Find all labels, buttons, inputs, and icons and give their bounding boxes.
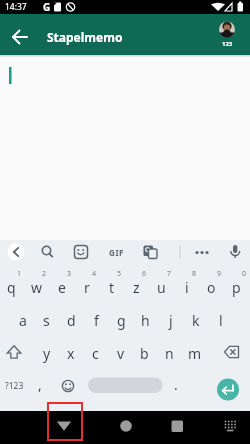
staticText: 8 — [192, 269, 197, 278]
staticText: t — [109, 278, 115, 297]
staticText: g — [117, 311, 126, 330]
button[interactable] — [72, 243, 90, 261]
button[interactable] — [7, 243, 25, 261]
staticText: 5 — [117, 269, 122, 278]
staticText: s — [43, 311, 50, 330]
button[interactable]: t — [99, 276, 124, 298]
button[interactable] — [2, 338, 28, 366]
button[interactable] — [226, 243, 244, 261]
button[interactable]: n — [157, 342, 182, 364]
staticText: y — [43, 344, 51, 363]
button[interactable]: i — [174, 276, 199, 298]
staticText: b — [140, 344, 149, 363]
staticText: o — [207, 278, 216, 297]
staticText: f — [94, 311, 99, 330]
staticText: q — [7, 278, 16, 297]
button[interactable]: p — [224, 276, 249, 298]
button[interactable]: a — [10, 309, 35, 331]
staticText: n — [165, 344, 174, 363]
staticText: 9 — [217, 269, 222, 278]
staticText: 2 — [42, 269, 47, 278]
button[interactable]: g — [109, 309, 134, 331]
staticText: d — [67, 311, 76, 330]
button[interactable]: . — [169, 375, 183, 393]
button[interactable]: e — [49, 276, 74, 298]
staticText: 3 — [67, 269, 72, 278]
button[interactable]: ?123 — [1, 379, 27, 393]
button[interactable]: f — [84, 309, 109, 331]
staticText: 123 — [222, 40, 233, 48]
staticText: m — [188, 344, 202, 363]
button[interactable]: o — [199, 276, 224, 298]
staticText: i — [185, 278, 189, 297]
button[interactable] — [38, 243, 56, 261]
staticText: Stapelmemo — [47, 29, 123, 45]
staticText: r — [84, 278, 90, 297]
button[interactable]: x — [58, 342, 83, 364]
button[interactable]: j — [158, 309, 183, 331]
staticText: z — [133, 278, 140, 297]
button[interactable]: k — [183, 309, 208, 331]
button[interactable] — [216, 18, 240, 48]
button[interactable]: u — [149, 276, 174, 298]
button[interactable]: h — [133, 309, 158, 331]
staticText: p — [232, 278, 241, 297]
button[interactable] — [141, 243, 159, 261]
button[interactable]: b — [132, 342, 157, 364]
staticText: v — [117, 344, 125, 363]
button[interactable] — [217, 378, 239, 400]
button[interactable] — [0, 14, 250, 55]
button[interactable]: y — [34, 342, 59, 364]
staticText: c — [92, 344, 99, 363]
button[interactable]: s — [34, 309, 59, 331]
staticText: ?123 — [5, 380, 24, 392]
staticText: l — [219, 311, 223, 330]
button[interactable]: d — [59, 309, 84, 331]
staticText: 1 — [17, 269, 22, 278]
button[interactable] — [8, 14, 34, 55]
staticText: . — [174, 375, 178, 393]
button[interactable] — [110, 411, 143, 444]
button[interactable] — [193, 244, 211, 262]
button[interactable] — [161, 411, 194, 444]
staticText: a — [19, 311, 27, 330]
staticText: j — [169, 311, 173, 330]
button[interactable]: GIF — [105, 245, 129, 259]
button[interactable] — [88, 378, 162, 393]
staticText: h — [141, 311, 150, 330]
button[interactable]: v — [108, 342, 133, 364]
staticText: 6 — [142, 269, 147, 278]
button[interactable] — [214, 411, 247, 444]
button[interactable]: , — [33, 375, 47, 393]
button[interactable]: w — [24, 276, 49, 298]
staticText: , — [38, 375, 42, 393]
staticText: GIF — [109, 247, 125, 258]
staticText: G — [43, 0, 51, 14]
staticText: k — [192, 311, 200, 330]
staticText: 14:37 — [5, 1, 27, 13]
button[interactable]: l — [208, 309, 233, 331]
staticText: w — [31, 278, 43, 297]
staticText: 7 — [167, 269, 172, 278]
staticText: 0 — [242, 269, 247, 278]
staticText: u — [157, 278, 166, 297]
button[interactable] — [56, 378, 80, 396]
button[interactable]: z — [124, 276, 149, 298]
button[interactable]: c — [83, 342, 108, 364]
button[interactable] — [218, 338, 246, 366]
button[interactable]: m — [182, 342, 207, 364]
button[interactable] — [48, 411, 81, 444]
staticText: 4 — [92, 269, 97, 278]
staticText: e — [58, 278, 66, 297]
button[interactable]: q — [0, 276, 24, 298]
staticText: x — [67, 344, 75, 363]
button[interactable]: r — [74, 276, 99, 298]
